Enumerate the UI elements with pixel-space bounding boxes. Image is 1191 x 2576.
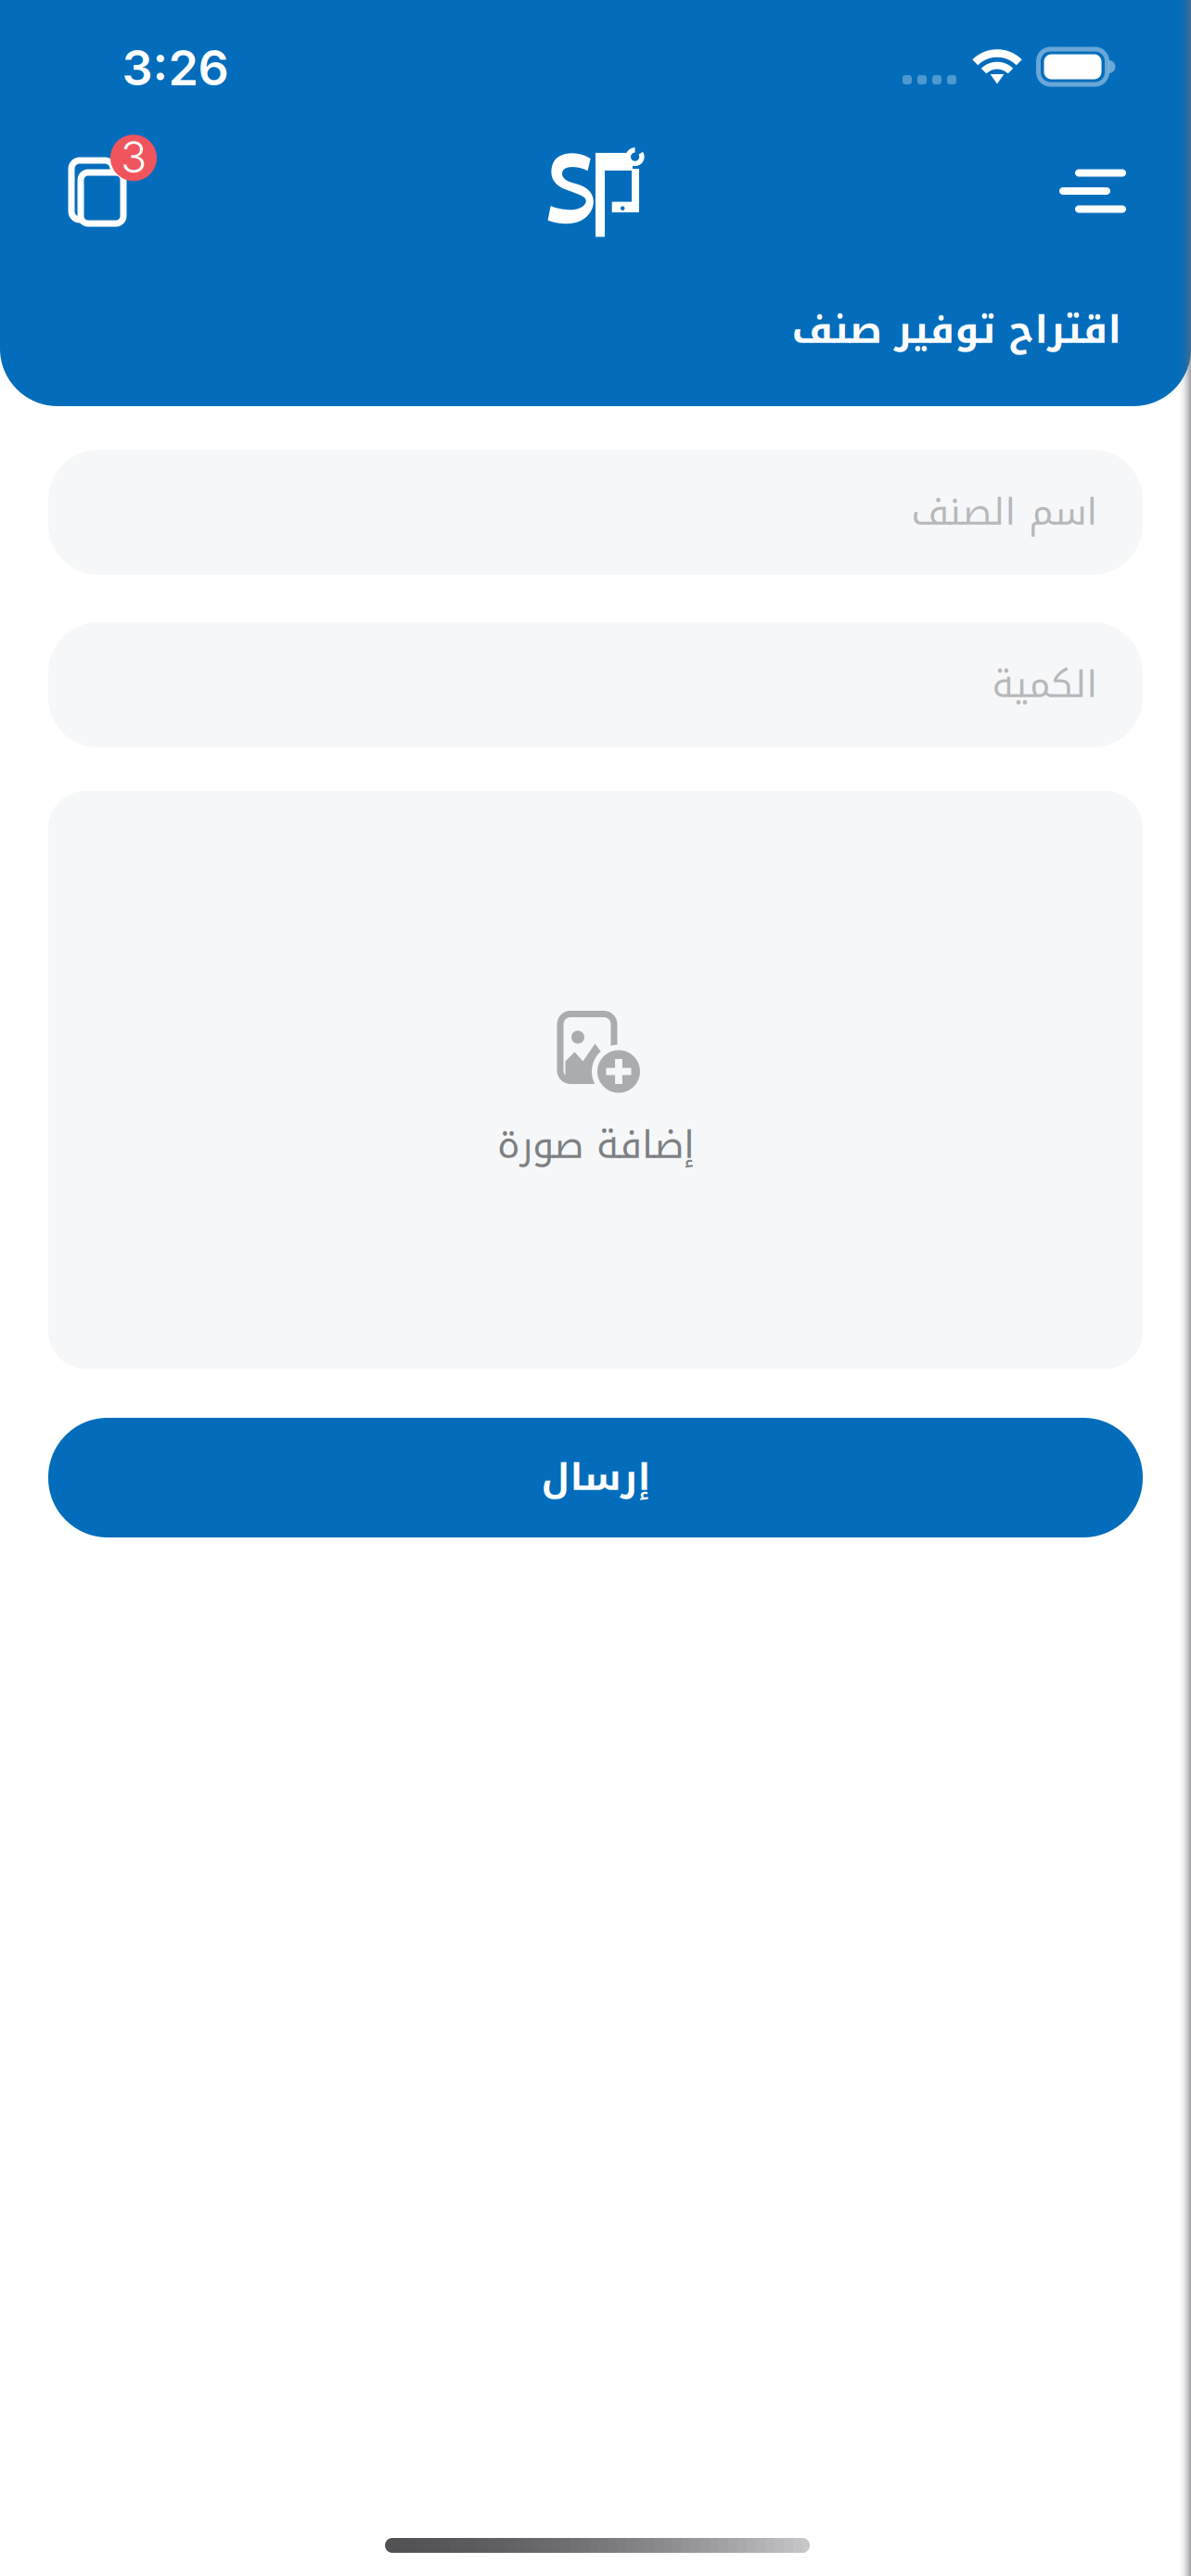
staticText: إرسال xyxy=(541,1442,650,1513)
staticText: 3:26 xyxy=(122,38,229,97)
button[interactable]: إضافة صورة xyxy=(48,791,1143,1369)
staticText: الكمية xyxy=(992,650,1097,720)
button[interactable]: Saved requests xyxy=(71,132,179,226)
staticText: اسم الصنف xyxy=(911,477,1097,548)
staticText: اقتراح توفير صنف xyxy=(791,294,1121,366)
staticText: 3 xyxy=(121,131,147,183)
button[interactable]: إرسال xyxy=(48,1418,1143,1537)
button[interactable]: Menu xyxy=(1042,140,1144,242)
staticText: إضافة صورة xyxy=(497,1109,694,1182)
